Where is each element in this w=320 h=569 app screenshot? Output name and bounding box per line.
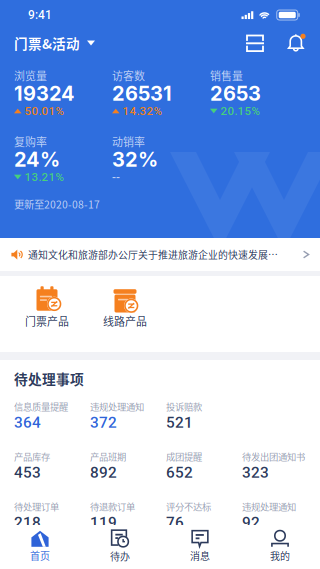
staticText: 评分不达标 xyxy=(166,500,211,513)
staticText: 门票产品 xyxy=(25,313,69,329)
staticText: 待办 xyxy=(110,549,130,563)
button[interactable]: 产品班期 xyxy=(90,451,166,481)
staticText: 20.15% xyxy=(220,104,260,118)
button[interactable]: 待处理订单 xyxy=(14,501,90,531)
button[interactable]: 门票产品 xyxy=(8,282,86,328)
staticText: 50.01% xyxy=(24,104,64,118)
staticText: -- xyxy=(112,170,120,184)
staticText: 违规处理通知 xyxy=(90,400,144,413)
staticText: 24% xyxy=(14,147,60,172)
staticText: 更新至2020-08-17 xyxy=(14,196,100,212)
button[interactable]: 线路产品 xyxy=(86,282,164,328)
button[interactable]: 我的 xyxy=(240,525,320,569)
staticText: 652 xyxy=(166,463,193,481)
staticText: 待处理事项 xyxy=(14,369,84,388)
staticText: 119 xyxy=(90,513,117,531)
button[interactable]: 消息 xyxy=(160,525,240,569)
staticText: 372 xyxy=(90,413,117,431)
staticText: 销售量 xyxy=(210,68,243,83)
staticText: 成团提醒 xyxy=(166,450,202,463)
button[interactable]: 评分不达标 xyxy=(166,501,242,531)
staticText: 323 xyxy=(242,463,269,481)
button[interactable]: 成团提醒 xyxy=(166,451,242,481)
staticText: 待发出团通知书 xyxy=(242,450,305,463)
staticText: 待退款订单 xyxy=(90,500,135,513)
button[interactable]: 违规处理通知 xyxy=(90,401,166,431)
staticText: 9:41 xyxy=(28,8,52,22)
staticText: 首页 xyxy=(30,548,50,563)
button[interactable]: 待办 xyxy=(80,525,160,569)
staticText: 92 xyxy=(242,513,260,531)
staticText: 我的 xyxy=(270,548,290,563)
staticText: 访客数 xyxy=(112,68,145,83)
staticText: 364 xyxy=(14,413,41,431)
staticText: 13.21% xyxy=(24,170,64,184)
staticText: 453 xyxy=(14,463,41,481)
staticText: 投诉赔款 xyxy=(166,400,202,413)
staticText: 通知文化和旅游部办公厅关于推进旅游企业的快速发展计划... xyxy=(28,247,284,262)
button[interactable]: 门票&活动 xyxy=(14,31,95,55)
staticText: 892 xyxy=(90,463,117,481)
staticText: 产品班期 xyxy=(90,450,126,463)
staticText: 浏览量 xyxy=(14,68,47,83)
button[interactable]: 首页 xyxy=(0,525,80,569)
button[interactable]: 产品库存 xyxy=(14,451,90,481)
staticText: 信息质量提醒 xyxy=(14,400,68,413)
staticText: 521 xyxy=(166,413,193,431)
staticText: 26531 xyxy=(112,81,172,106)
staticText: 产品库存 xyxy=(14,450,50,463)
staticText: 218 xyxy=(14,513,41,531)
staticText: 14.32% xyxy=(122,104,162,118)
button[interactable]: 通知文化和旅游部办公厅关于推进旅游企业的快速发展计划... xyxy=(0,238,320,271)
button[interactable]: 待退款订单 xyxy=(90,501,166,531)
button[interactable]: 通知 xyxy=(287,33,306,52)
staticText: 2653 xyxy=(210,81,261,106)
button[interactable]: 切换视图 xyxy=(246,33,264,52)
staticText: 线路产品 xyxy=(103,313,147,329)
button[interactable]: 违规处理通知 xyxy=(242,501,318,531)
staticText: 19324 xyxy=(14,81,75,106)
staticText: 待处理订单 xyxy=(14,500,59,513)
button[interactable]: 信息质量提醒 xyxy=(14,401,90,431)
staticText: 门票&活动 xyxy=(14,33,80,53)
button[interactable]: 待发出团通知书 xyxy=(242,451,318,481)
staticText: 复购率 xyxy=(14,134,47,149)
button[interactable]: 投诉赔款 xyxy=(166,401,242,431)
staticText: 动销率 xyxy=(112,134,145,149)
staticText: 76 xyxy=(166,513,184,531)
staticText: 32% xyxy=(112,147,158,172)
staticText: 违规处理通知 xyxy=(242,500,296,513)
staticText: 消息 xyxy=(190,548,210,563)
